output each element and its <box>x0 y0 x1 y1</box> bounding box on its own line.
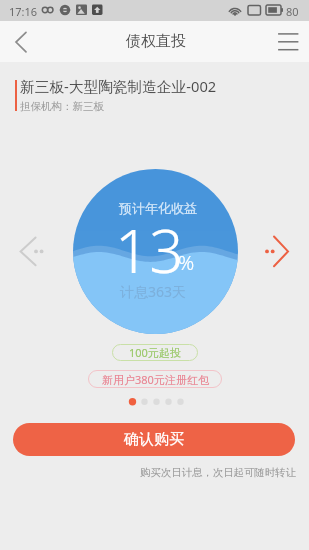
staticText: 100元起投 <box>129 345 181 360</box>
staticText: 债权直投 <box>126 32 186 51</box>
button[interactable]: 确认购买 <box>13 423 295 456</box>
button[interactable]: 预计年化收益 <box>73 169 238 334</box>
staticText: 17:16 <box>9 4 38 19</box>
staticText: 13 <box>115 209 184 291</box>
staticText: 计息363天 <box>120 282 187 301</box>
staticText: 预计年化收益 <box>119 200 197 216</box>
button[interactable]: Back <box>4 21 40 62</box>
button[interactable]: Page indicator <box>124 391 188 406</box>
staticText: 80 <box>286 4 299 19</box>
button[interactable]: Menu <box>268 21 309 62</box>
staticText: 确认购买 <box>124 430 184 449</box>
staticText: 新三板-大型陶瓷制造企业-002 <box>20 76 217 96</box>
staticText: % <box>178 249 195 276</box>
staticText: 购买次日计息，次日起可随时转让 <box>140 466 296 479</box>
button[interactable]: Next product <box>259 232 297 271</box>
button[interactable]: Previous product <box>12 232 50 271</box>
staticText: 新用户380元注册红包 <box>102 372 209 387</box>
staticText: 担保机构：新三板 <box>20 100 104 113</box>
